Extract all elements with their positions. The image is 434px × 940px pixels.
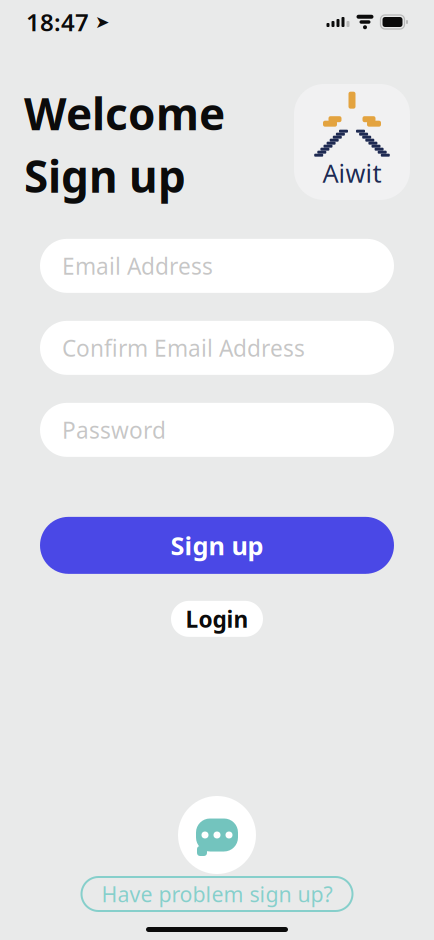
button[interactable]: Login <box>171 601 263 637</box>
button[interactable]: Sign up <box>40 517 394 574</box>
button[interactable]: Email Address <box>40 239 394 293</box>
staticText: Sign up <box>170 528 263 562</box>
staticText: ➤ <box>95 12 110 32</box>
staticText: Sign up <box>24 146 186 205</box>
staticText: Email Address <box>62 251 213 281</box>
staticText: Confirm Email Address <box>62 333 305 363</box>
staticText: 18:47 <box>26 6 89 38</box>
staticText: Aiwit <box>322 156 381 190</box>
button[interactable]: Open support chat <box>178 796 256 874</box>
button[interactable]: Password <box>40 403 394 457</box>
staticText: Welcome <box>24 84 225 142</box>
staticText: Have problem sign up? <box>101 880 332 908</box>
staticText: Login <box>185 604 248 634</box>
staticText: Password <box>62 415 166 445</box>
button[interactable]: Have problem sign up? <box>81 877 352 911</box>
button[interactable]: Confirm Email Address <box>40 321 394 375</box>
